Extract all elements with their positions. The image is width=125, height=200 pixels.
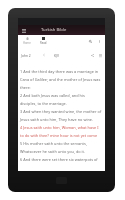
button[interactable]: More options [95,37,104,46]
staticText: 6 And there were set there six waterpots… [20,157,98,162]
button[interactable]: Search [86,37,95,46]
staticText: 3 And when they wanted wine, the mother … [20,109,102,114]
staticText: Read [40,41,47,45]
button[interactable]: Share [88,51,96,59]
staticText: Whatsoever he saith unto you, do it. [20,149,86,154]
button[interactable]: Previous chapter [41,52,47,58]
button[interactable]: Settings [96,51,104,59]
staticText: 4 Jesus saith unto him, Woman, what have… [20,125,99,130]
staticText: Home [23,41,31,45]
staticText: to do with thee? mine hour is not yet co… [20,133,98,138]
button[interactable]: Read [35,37,51,45]
button[interactable]: Menu [19,26,28,35]
button[interactable]: Home [19,37,35,45]
staticText: disciples, to the marriage. [20,101,67,106]
staticText: 5 His mother saith unto the servants, [20,141,87,146]
staticText: KJV [54,53,59,57]
staticText: Cana of Galilee; and the mother of Jesus… [20,77,101,82]
staticText: Turkish Bible [41,27,67,33]
staticText: 2 And both Jesus was called, and his [20,93,85,98]
button[interactable]: KJV [53,53,60,57]
staticText: John 2 [21,53,31,57]
staticText: 1 And the third day there was a marriage… [20,69,99,74]
button[interactable]: John 2 [20,53,32,57]
staticText: Jesus saith unto him, They have no wine. [20,117,93,122]
staticText: there: [20,85,31,90]
